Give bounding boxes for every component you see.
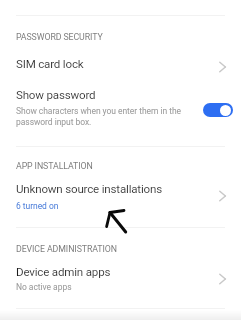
staticText: Unknown source installations	[16, 182, 162, 196]
staticText: Show characters when you enter them in t…	[16, 106, 182, 116]
button[interactable]	[0, 50, 241, 81]
staticText: PASSWORD SECURITY	[16, 32, 103, 42]
button[interactable]	[203, 103, 233, 117]
staticText: password input box.	[16, 117, 92, 127]
button[interactable]	[0, 178, 241, 218]
staticText: No active apps	[16, 282, 72, 292]
staticText: 6 turned on	[16, 201, 59, 211]
staticText: DEVICE ADMINISTRATION	[16, 244, 117, 254]
button[interactable]	[0, 85, 241, 133]
staticText: Device admin apps	[16, 265, 111, 279]
staticText: Show password	[16, 88, 96, 102]
staticText: APP INSTALLATION	[16, 161, 93, 171]
button[interactable]	[0, 262, 241, 298]
staticText: SIM card lock	[16, 57, 84, 71]
